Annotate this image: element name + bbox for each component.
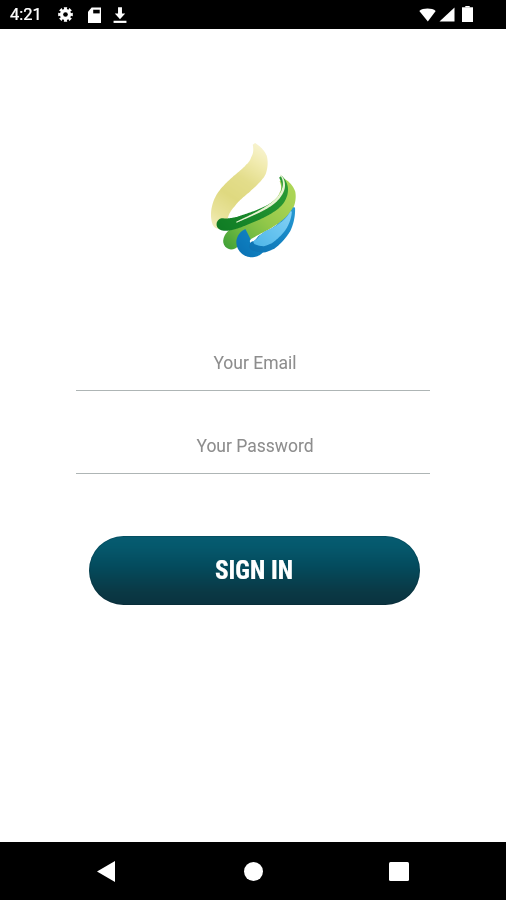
staticText: Your Email — [213, 353, 297, 374]
button[interactable]: Recent apps — [355, 842, 443, 900]
button[interactable]: Home — [209, 842, 297, 900]
staticText: SIGN IN — [215, 556, 294, 585]
staticText: Your Password — [196, 436, 314, 457]
button[interactable]: Back — [62, 842, 150, 900]
button[interactable]: SIGN IN — [89, 536, 420, 605]
staticText: 4:21 — [10, 5, 42, 24]
button[interactable]: Your Email — [78, 341, 432, 386]
button[interactable]: Your Password — [78, 424, 432, 469]
